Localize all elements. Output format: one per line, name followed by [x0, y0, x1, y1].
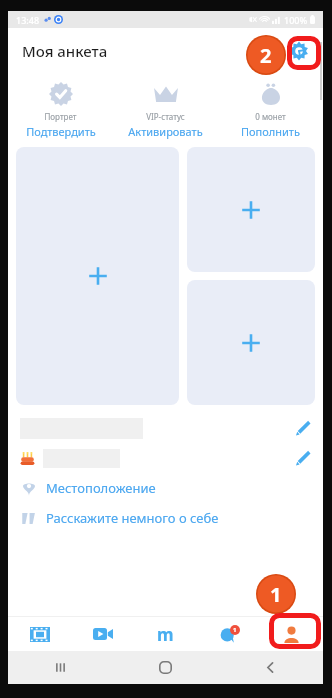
staticText: 1: [270, 581, 282, 608]
staticText: 0 монет: [255, 111, 286, 122]
staticText: Портрет: [44, 111, 77, 122]
button[interactable]: Настройки: [283, 35, 315, 67]
staticText: 2: [260, 42, 272, 69]
button[interactable]: Редактировать: [20, 443, 311, 473]
button[interactable]: VIP-статус: [113, 78, 218, 141]
staticText: VIP-статус: [146, 111, 185, 122]
staticText: Расскажите немного о себе: [46, 509, 219, 527]
other: Редактировать: [295, 450, 311, 466]
button[interactable]: Сообщения: [197, 617, 260, 651]
button[interactable]: Добавить фото: [16, 147, 179, 405]
staticText: Местоположение: [46, 479, 156, 497]
staticText: Подтвердить: [26, 124, 96, 139]
button[interactable]: Добавить фото: [187, 280, 315, 405]
button[interactable]: Профиль: [260, 617, 323, 651]
button[interactable]: Видео: [71, 617, 134, 651]
staticText: 13:48: [16, 14, 40, 26]
button[interactable]: Портрет: [8, 78, 113, 141]
button[interactable]: 0 монет: [218, 78, 323, 141]
button[interactable]: Расскажите немного о себе: [20, 503, 311, 533]
other: Редактировать: [295, 420, 311, 436]
staticText: Моя анкета: [22, 41, 108, 61]
staticText: 100%: [284, 14, 308, 26]
button[interactable]: Недавние: [8, 651, 113, 684]
button[interactable]: Главный экран: [113, 651, 218, 684]
button[interactable]: Редактировать: [20, 413, 311, 443]
button[interactable]: Местоположение: [20, 473, 311, 503]
button[interactable]: Назад: [218, 651, 323, 684]
button[interactable]: Лента: [8, 617, 71, 651]
button[interactable]: Добавить фото: [187, 147, 315, 272]
staticText: m: [157, 623, 174, 646]
staticText: Активировать: [128, 124, 203, 139]
staticText: Пополнить: [241, 124, 300, 139]
staticText: 1: [233, 626, 237, 634]
button[interactable]: Знакомства: [134, 617, 197, 651]
